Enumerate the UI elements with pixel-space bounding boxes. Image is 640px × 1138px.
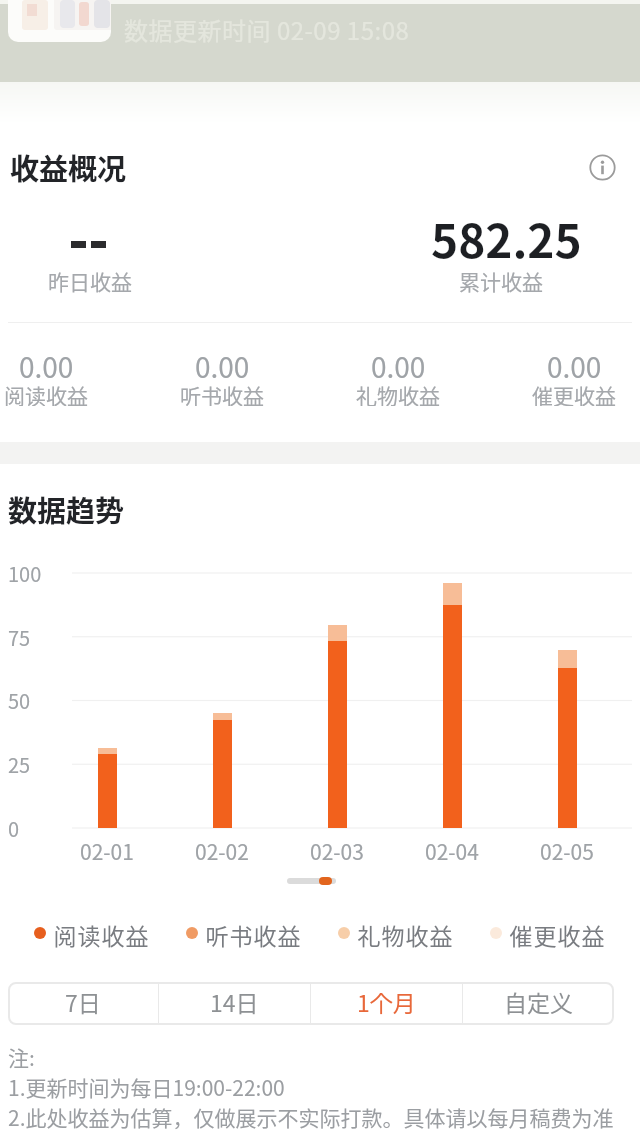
staticText: 02-05 xyxy=(540,836,594,862)
staticText: 催更收益 xyxy=(532,380,616,406)
staticText: 礼物收益 xyxy=(357,918,453,948)
staticText: 数据趋势 xyxy=(8,488,125,528)
staticText: 02-03 xyxy=(310,836,364,862)
button[interactable]: 1个月 xyxy=(311,982,462,1025)
button[interactable]: 14日 xyxy=(159,982,310,1025)
staticText: 2.此处收益为估算，仅做展示不实际打款。具体请以每月稿费为准 xyxy=(8,1102,614,1130)
staticText: 02-04 xyxy=(425,836,479,862)
button[interactable]: 自定义 xyxy=(463,982,614,1025)
staticText: 02-02 xyxy=(195,836,249,862)
staticText: 1.更新时间为每日19:00-22:00 xyxy=(8,1072,285,1100)
staticText: 昨日收益 xyxy=(48,266,132,294)
staticText: 累计收益 xyxy=(459,266,543,294)
staticText: 50 xyxy=(8,686,31,714)
staticText: 催更收益 xyxy=(509,918,605,948)
button[interactable] xyxy=(589,154,616,181)
staticText: 0.00 xyxy=(547,346,602,378)
staticText: 自定义 xyxy=(504,985,573,1018)
staticText: 25 xyxy=(8,750,31,778)
staticText: 0.00 xyxy=(195,346,250,378)
staticText: 阅读收益 xyxy=(4,380,88,406)
staticText: 0 xyxy=(8,814,20,842)
staticText: 阅读收益 xyxy=(53,918,149,948)
button[interactable] xyxy=(0,344,116,408)
button[interactable] xyxy=(152,344,292,408)
staticText: 收益概况 xyxy=(10,146,127,186)
staticText: 100 xyxy=(8,559,42,587)
button[interactable] xyxy=(328,344,468,408)
staticText: 7日 xyxy=(65,985,101,1018)
staticText: 14日 xyxy=(210,985,259,1018)
staticText: 听书收益 xyxy=(205,918,301,948)
staticText: 1个月 xyxy=(357,985,416,1018)
staticText: 注: xyxy=(8,1042,35,1070)
staticText: 582.25 xyxy=(431,205,582,269)
button[interactable]: 7日 xyxy=(8,982,158,1025)
button[interactable] xyxy=(8,0,111,42)
staticText: 礼物收益 xyxy=(356,380,440,406)
staticText: 75 xyxy=(8,623,31,651)
staticText: 02-01 xyxy=(80,836,134,862)
staticText: 0.00 xyxy=(371,346,426,378)
staticText: 数据更新时间 02-09 15:08 xyxy=(124,12,410,46)
staticText: 听书收益 xyxy=(180,380,264,406)
staticText: 0.00 xyxy=(19,346,74,378)
button[interactable] xyxy=(504,344,640,408)
